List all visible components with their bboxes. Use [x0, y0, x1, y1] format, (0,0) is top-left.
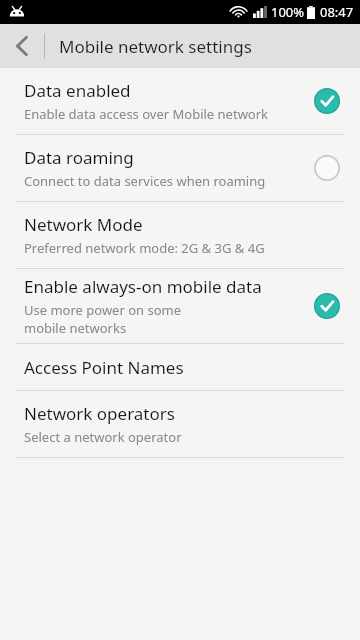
button[interactable]: Enable always-on mobile data	[0, 269, 360, 343]
button[interactable]: Network operators	[0, 391, 360, 457]
button[interactable]: Data enabled	[0, 68, 360, 134]
staticText: Access Point Names	[24, 356, 184, 379]
button[interactable]: Network Mode	[0, 202, 360, 268]
staticText: Network operators	[24, 402, 175, 425]
staticText: Enable data access over Mobile network	[24, 105, 300, 123]
staticText: Use more power on some mobile networks	[24, 301, 223, 337]
staticText: Connect to data services when roaming	[24, 172, 300, 190]
button[interactable]: Enabled	[310, 289, 344, 323]
button[interactable]: Enabled	[310, 84, 344, 118]
staticText: 100%	[271, 3, 305, 21]
staticText: Network Mode	[24, 213, 143, 236]
staticText: Data roaming	[24, 146, 134, 169]
button[interactable]: Disabled	[310, 151, 344, 185]
button[interactable]: Access Point Names	[0, 344, 360, 390]
staticText: Enable always-on mobile data	[24, 275, 262, 298]
staticText: Mobile network settings	[59, 35, 252, 58]
staticText: Select a network operator	[24, 428, 344, 446]
staticText: Data enabled	[24, 79, 131, 102]
button[interactable]: Data roaming	[0, 135, 360, 201]
staticText: 08:47	[320, 3, 354, 21]
staticText: Preferred network mode: 2G & 3G & 4G	[24, 239, 344, 257]
button[interactable]: Back	[0, 24, 44, 68]
